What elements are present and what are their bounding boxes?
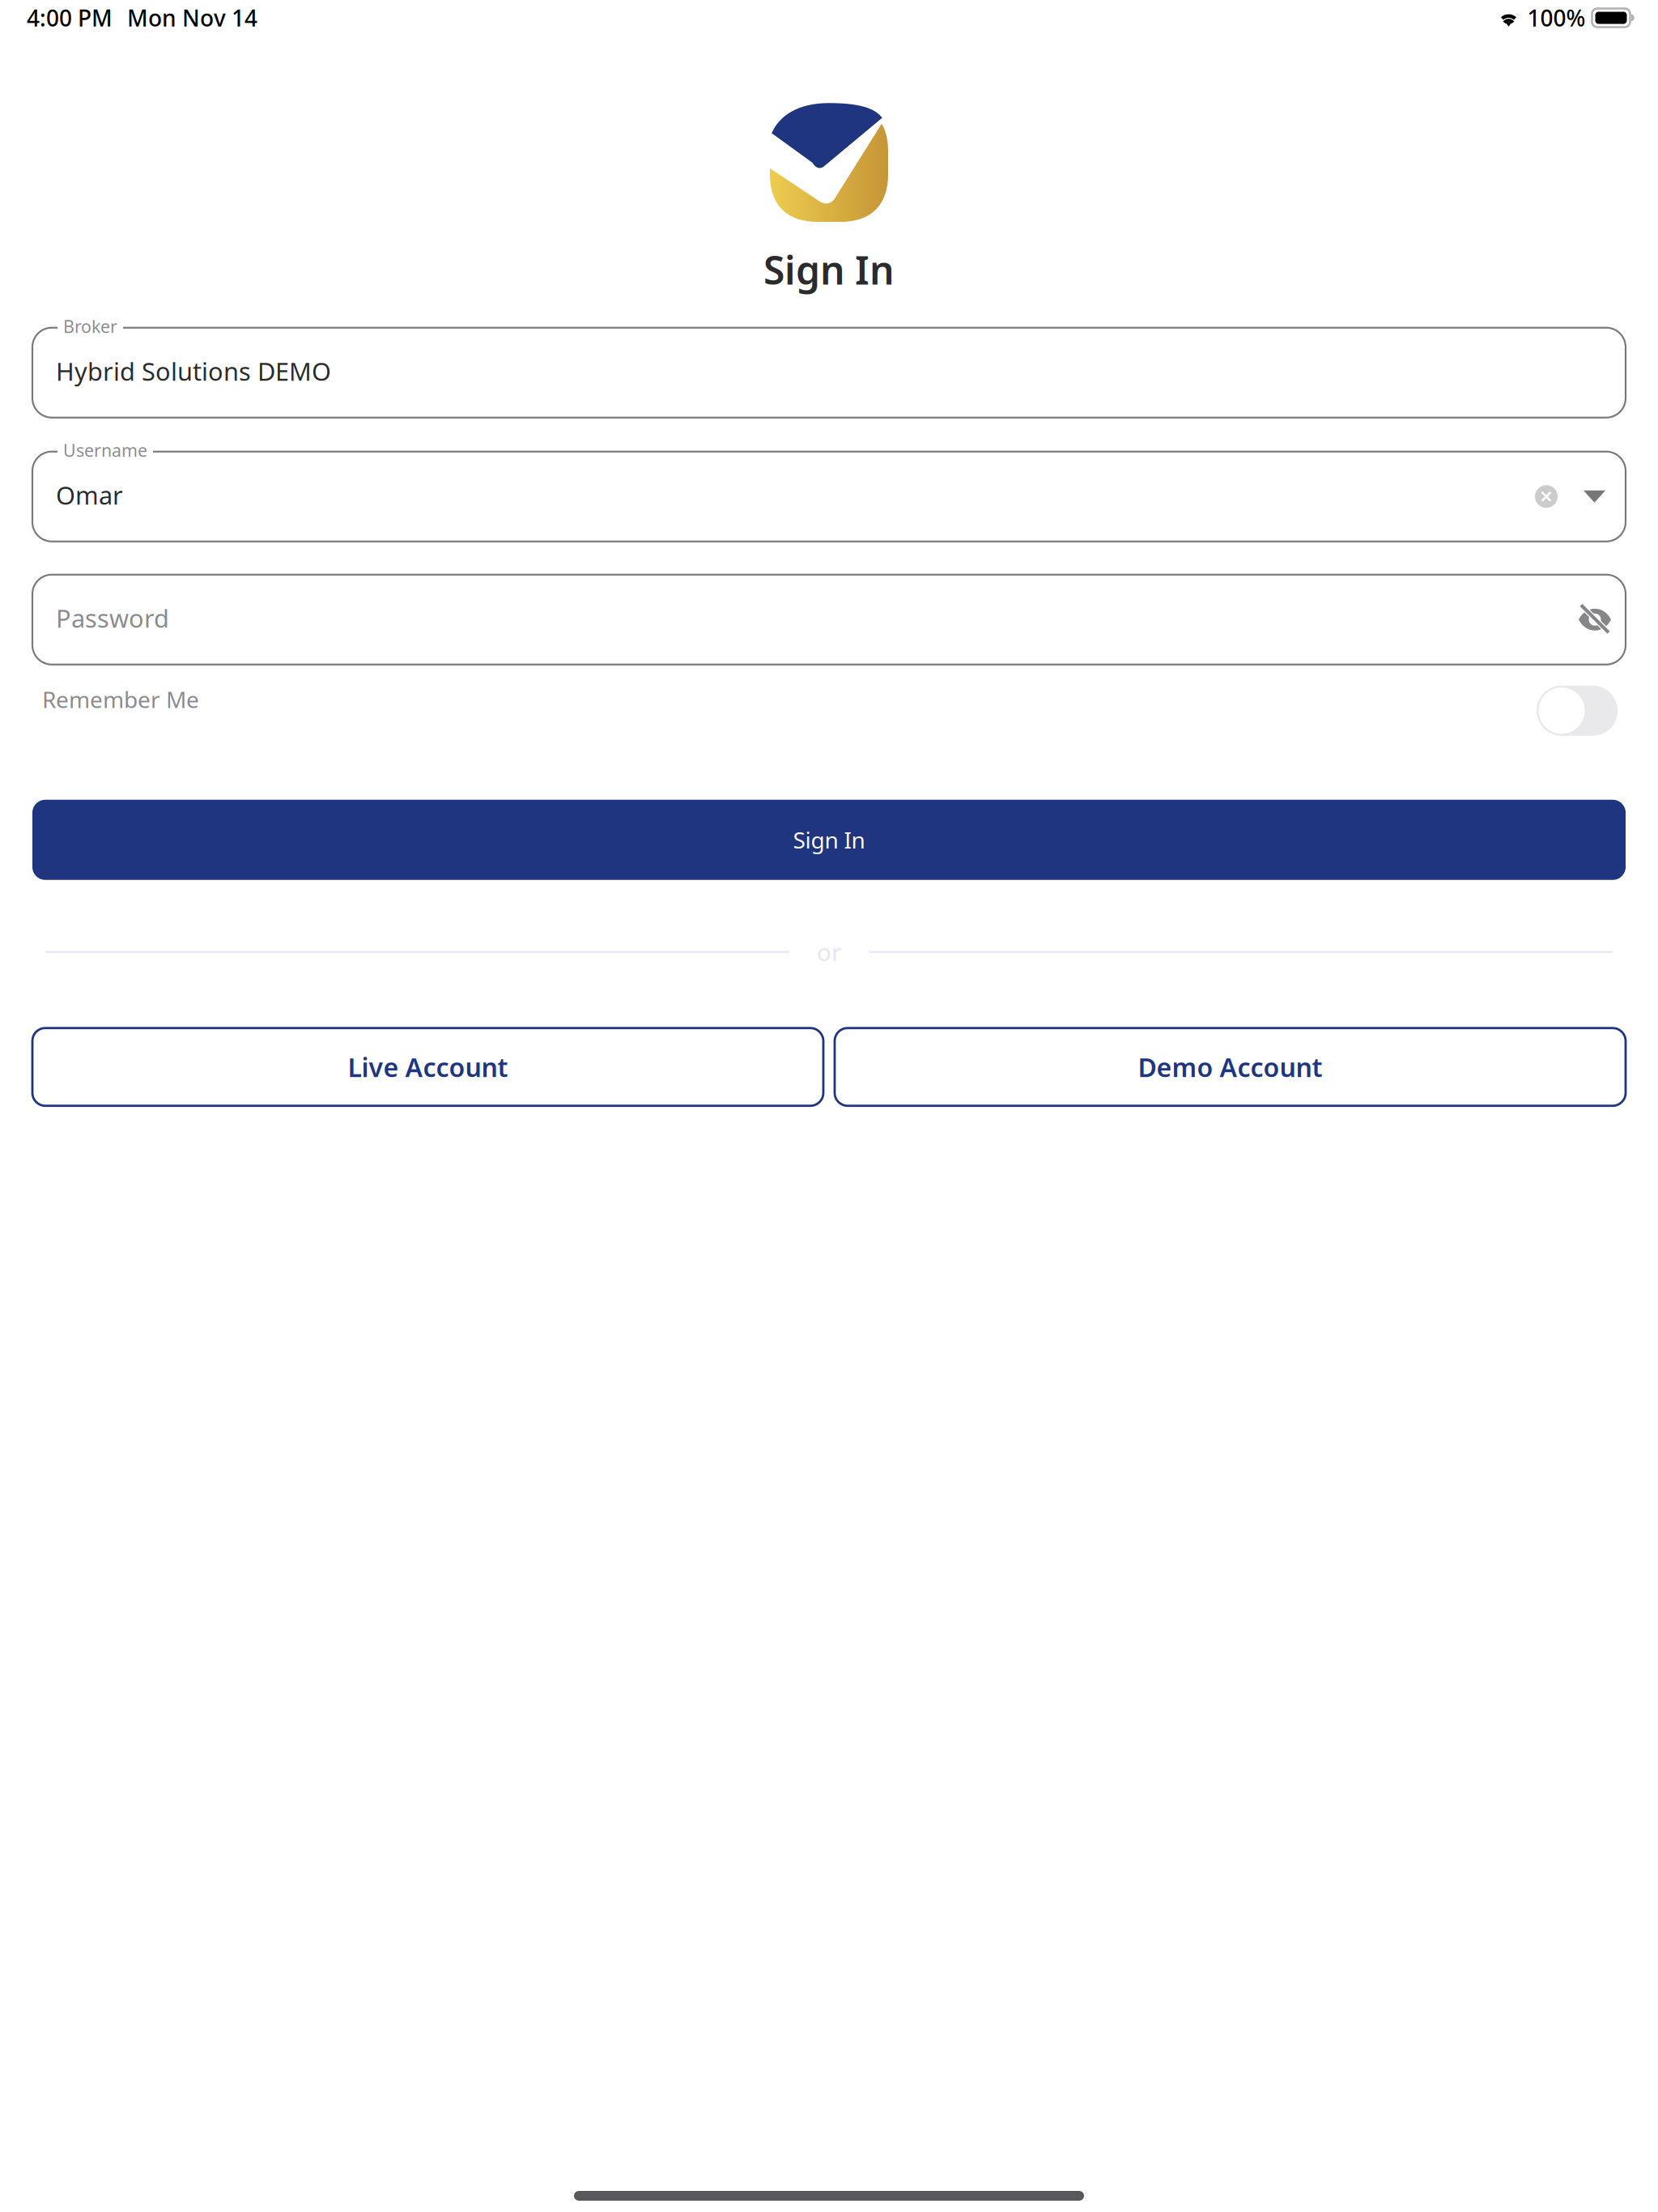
staticText: Password	[56, 601, 169, 634]
staticText: Username	[63, 439, 147, 462]
staticText: 100%	[1527, 3, 1586, 33]
staticText: Omar	[56, 478, 123, 511]
button[interactable]: Show password	[1578, 603, 1612, 636]
button[interactable]: Demo Account	[835, 1028, 1626, 1106]
staticText: Sign In	[793, 825, 865, 855]
button[interactable]: Live Account	[32, 1028, 823, 1106]
button[interactable]: Remember Me	[1537, 674, 1618, 724]
button[interactable]: Clear username	[1535, 485, 1558, 508]
button[interactable]: Show saved usernames	[1584, 490, 1605, 503]
staticText: Live Account	[348, 1050, 508, 1084]
staticText: Remember Me	[42, 684, 199, 714]
staticText: or	[817, 936, 841, 968]
staticText: Mon Nov 14	[127, 3, 257, 33]
button[interactable]: Hybrid Solutions DEMO	[32, 328, 1626, 418]
button[interactable]: Omar	[32, 452, 1626, 541]
button[interactable]: Sign In	[32, 800, 1626, 880]
staticText: Hybrid Solutions DEMO	[56, 355, 331, 388]
button[interactable]: Password	[32, 575, 1626, 664]
staticText: Sign In	[763, 244, 895, 295]
staticText: Broker	[63, 315, 117, 338]
staticText: 4:00 PM	[27, 3, 113, 33]
staticText: Demo Account	[1138, 1050, 1322, 1084]
